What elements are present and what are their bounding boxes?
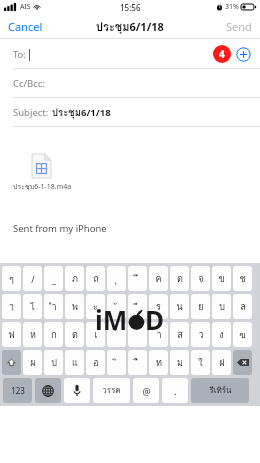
button[interactable]: ท	[149, 350, 168, 375]
button[interactable]: ื	[128, 350, 147, 375]
staticText: ภ	[72, 272, 78, 286]
staticText: AIS	[20, 2, 31, 12]
button[interactable]: จ	[191, 266, 210, 291]
staticText: Sent from my iPhone	[13, 222, 107, 235]
staticText: 31%	[225, 2, 239, 12]
button[interactable]: ใ	[191, 350, 210, 375]
button[interactable]: Cancel	[0, 15, 51, 38]
staticText: ไ	[30, 300, 35, 314]
staticText: ว	[198, 328, 204, 342]
staticText: /	[31, 273, 35, 285]
button[interactable]: ร	[149, 294, 168, 319]
button[interactable]: ป	[44, 350, 63, 375]
button[interactable]: ี	[128, 294, 147, 319]
staticText: D	[145, 302, 165, 337]
button[interactable]: ผ	[23, 350, 42, 375]
button[interactable]: Backspace	[233, 350, 252, 375]
button[interactable]: น	[170, 294, 189, 319]
staticText: พ	[72, 300, 78, 314]
button[interactable]: ฟ	[2, 322, 21, 347]
button[interactable]: ้	[107, 322, 126, 347]
staticText: ประชุม6-1-18.m4a	[13, 181, 72, 192]
button[interactable]: ข	[212, 266, 231, 291]
staticText: ผ	[30, 356, 36, 370]
staticText: Cc/Bcc:	[13, 77, 45, 90]
button[interactable]: า	[149, 322, 168, 347]
button[interactable]: ั	[107, 294, 126, 319]
staticText: To:	[13, 48, 26, 61]
staticText: Cancel	[8, 19, 43, 34]
staticText: า	[156, 328, 162, 342]
button[interactable]: ม	[170, 350, 189, 375]
button[interactable]: Send	[218, 15, 260, 38]
staticText: 123	[11, 385, 25, 396]
button[interactable]: ิ	[107, 350, 126, 375]
button[interactable]: ะ	[86, 294, 105, 319]
staticText: ใ	[198, 356, 203, 370]
button[interactable]: เ	[86, 322, 105, 347]
button[interactable]: Add contact	[236, 47, 251, 62]
button[interactable]: ภ	[65, 266, 84, 291]
staticText: ถ	[93, 272, 99, 286]
button[interactable]: ๆ	[2, 266, 21, 291]
button[interactable]: Shift	[2, 350, 21, 375]
staticText: วรรค	[102, 384, 121, 397]
button[interactable]: วรรค	[93, 378, 130, 403]
button[interactable]: ำ	[44, 294, 63, 319]
button[interactable]: ล	[233, 294, 252, 319]
staticText: ด	[72, 328, 78, 342]
staticText: ย	[198, 300, 204, 314]
button[interactable]: ถ	[86, 266, 105, 291]
staticText: ๆ	[9, 272, 14, 286]
button[interactable]: Dictate	[64, 378, 90, 403]
button[interactable]: ุ	[107, 266, 126, 291]
button[interactable]: ช	[233, 266, 252, 291]
staticText: บ	[219, 300, 225, 314]
button[interactable]: พ	[65, 294, 84, 319]
staticText: ค	[155, 272, 162, 286]
button[interactable]: @	[133, 378, 159, 403]
button[interactable]: อ	[86, 350, 105, 375]
button[interactable]: แ	[65, 350, 84, 375]
staticText: ฃ	[239, 328, 246, 342]
staticText: @	[142, 385, 151, 397]
button[interactable]: ่	[128, 322, 147, 347]
button[interactable]: ฝ	[212, 350, 231, 375]
staticText: ช	[239, 272, 246, 286]
staticText: iM	[95, 302, 128, 337]
staticText: รีเทิร์น	[209, 384, 232, 397]
button[interactable]: ไ	[23, 294, 42, 319]
button[interactable]: /	[23, 266, 42, 291]
staticText: ส	[177, 328, 183, 342]
staticText: ท	[156, 356, 162, 370]
button[interactable]: .	[162, 378, 188, 403]
staticText: แ	[72, 356, 78, 370]
button[interactable]: ฃ	[233, 322, 252, 347]
button[interactable]: ค	[149, 266, 168, 291]
button[interactable]: ส	[170, 322, 189, 347]
button[interactable]: ต	[170, 266, 189, 291]
staticText: ข	[218, 272, 225, 286]
button[interactable]: 123	[3, 378, 32, 403]
button[interactable]: ห	[23, 322, 42, 347]
button[interactable]: Switch keyboard	[35, 378, 61, 403]
staticText: น	[176, 300, 183, 314]
staticText: Send	[226, 19, 252, 34]
button[interactable]: ด	[65, 322, 84, 347]
button[interactable]: ๅ	[2, 294, 21, 319]
staticText: 4	[219, 47, 225, 61]
staticText: .	[174, 385, 177, 397]
button[interactable]: ก	[44, 322, 63, 347]
staticText: ป	[51, 356, 57, 370]
staticText: Subject:	[13, 106, 49, 119]
button[interactable]: บ	[212, 294, 231, 319]
button[interactable]: รีเทิร์น	[191, 378, 249, 403]
button[interactable]: _	[44, 266, 63, 291]
button[interactable]: ง	[212, 322, 231, 347]
button[interactable]: ย	[191, 294, 210, 319]
button[interactable]: ึ	[128, 266, 147, 291]
button[interactable]: ว	[191, 322, 210, 347]
staticText: ๅ	[9, 300, 14, 314]
staticText: ต	[177, 272, 183, 286]
staticText: ฟ	[8, 328, 15, 342]
